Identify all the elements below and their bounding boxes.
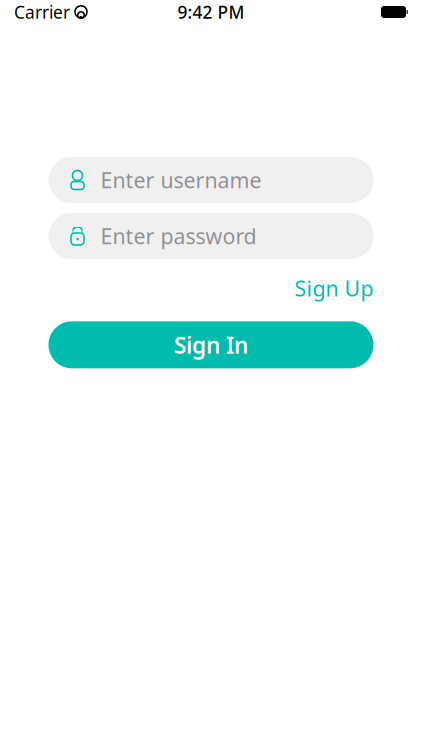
staticText: Enter password [100,222,256,250]
staticText: Sign Up [294,274,373,302]
staticText: Enter username [100,166,261,194]
staticText: 9:42 PM [177,0,244,23]
staticText: Carrier [14,0,70,23]
button[interactable]: Enter username [48,157,373,203]
button[interactable]: Enter password [48,213,373,259]
staticText: Sign In [174,330,248,360]
button[interactable]: Sign In [48,321,373,368]
button[interactable]: Sign Up [294,270,373,306]
